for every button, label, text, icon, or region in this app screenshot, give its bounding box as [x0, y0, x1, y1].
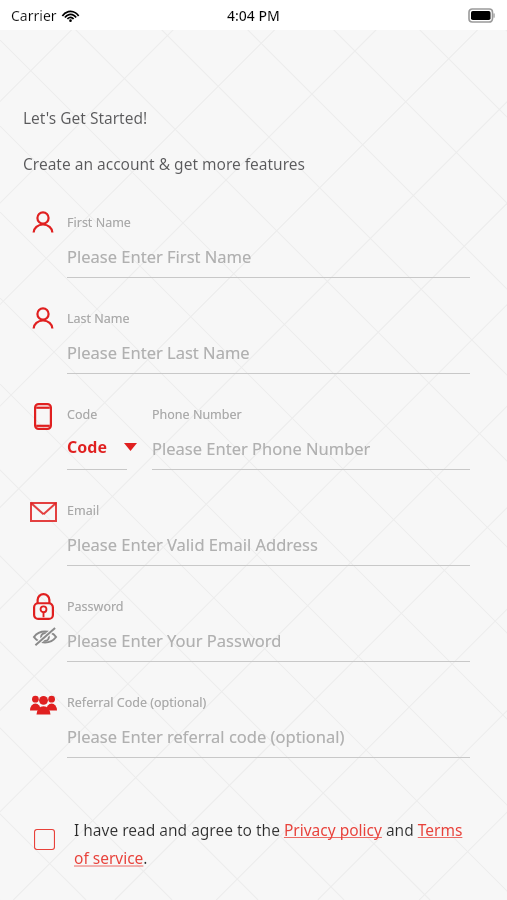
other: Last name — [26, 303, 60, 337]
button[interactable]: Show password — [30, 625, 60, 649]
staticText: Code — [67, 436, 107, 458]
staticText: Please Enter Last Name — [67, 341, 250, 363]
staticText: Carrier — [11, 6, 57, 25]
staticText: Create an account & get more features — [23, 153, 305, 174]
button[interactable]: Code — [63, 431, 141, 463]
other: Agree to terms — [34, 829, 55, 850]
button[interactable]: Referral code — [0, 679, 507, 775]
button[interactable]: Last name — [0, 295, 507, 391]
other: Phone — [26, 399, 60, 433]
staticText: Phone Number — [152, 406, 242, 423]
button[interactable]: Agree to terms — [34, 819, 477, 869]
staticText: Please Enter Valid Email Address — [67, 533, 318, 555]
staticText: Please Enter Your Password — [67, 629, 282, 651]
button[interactable]: Email — [0, 487, 507, 583]
other: Email — [26, 495, 60, 529]
other: Referral code — [26, 687, 60, 721]
staticText: Password — [67, 598, 124, 615]
staticText: Referral Code (optional) — [67, 694, 207, 711]
button[interactable]: First name — [0, 199, 507, 295]
staticText: First Name — [67, 214, 131, 231]
staticText: Code — [67, 406, 98, 423]
staticText: Please Enter referral code (optional) — [67, 725, 345, 747]
button[interactable]: Password — [0, 583, 507, 679]
staticText: Please Enter First Name — [67, 245, 252, 267]
button[interactable]: Please Enter Phone Number — [152, 437, 371, 459]
staticText: I have read and agree to the Privacy pol… — [74, 819, 477, 869]
staticText: Last Name — [67, 310, 130, 327]
other: Password — [26, 589, 60, 623]
other: First name — [26, 207, 60, 241]
staticText: Let's Get Started! — [23, 107, 148, 128]
staticText: Email — [67, 502, 100, 519]
staticText: 4:04 PM — [227, 6, 280, 25]
